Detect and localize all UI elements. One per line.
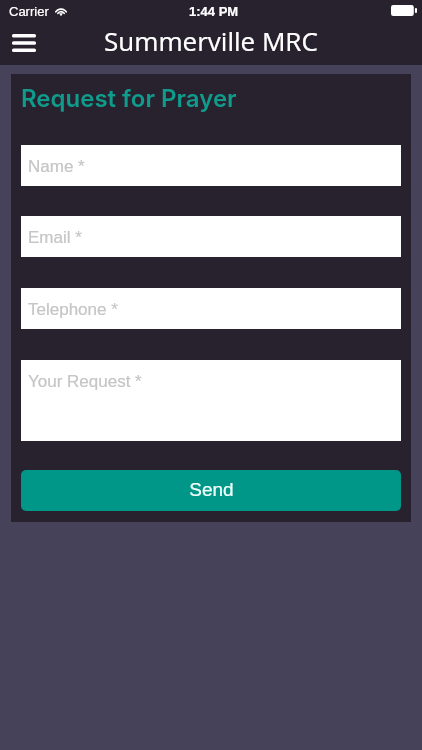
button[interactable]: Open navigation menu — [0, 22, 48, 65]
staticText: Name * — [28, 157, 85, 176]
staticText: 1:44 PM — [189, 4, 239, 19]
staticText: Telephone * — [28, 300, 118, 319]
staticText: Send — [189, 479, 234, 500]
staticText: Request for Prayer — [21, 84, 237, 113]
staticText: Carrier — [9, 4, 49, 19]
button[interactable]: Telephone * — [21, 288, 401, 329]
staticText: Email * — [28, 228, 82, 247]
button[interactable]: Send — [21, 470, 401, 511]
staticText: Your Request * — [28, 372, 142, 391]
button[interactable]: Name * — [21, 145, 401, 186]
staticText: Summerville MRC — [104, 23, 318, 58]
button[interactable]: Your Request * — [21, 360, 401, 441]
button[interactable]: Email * — [21, 216, 401, 257]
